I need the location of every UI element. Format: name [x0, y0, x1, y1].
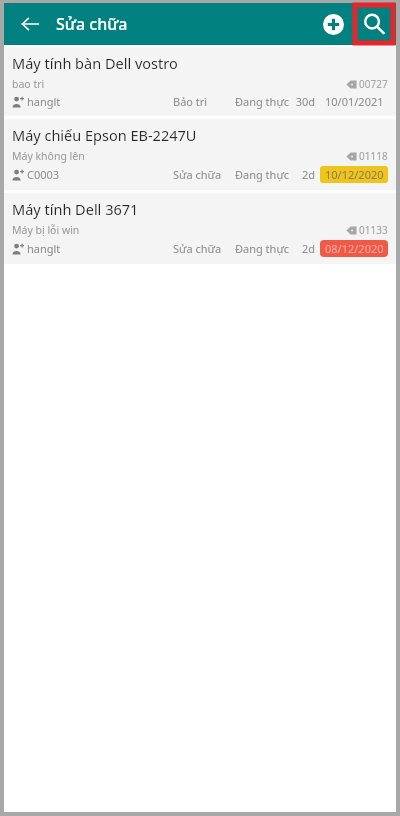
button[interactable]: Back	[12, 6, 48, 42]
staticText: Sửa chữa	[173, 167, 235, 182]
staticText: Đang thực	[235, 167, 293, 182]
staticText: 2d	[293, 241, 315, 256]
staticText: 01118	[359, 149, 388, 163]
staticText: 01133	[359, 223, 388, 237]
staticText: Đang thực	[235, 94, 293, 109]
staticText: Máy tính Dell 3671	[12, 199, 139, 219]
staticText: Sửa chữa	[56, 13, 128, 35]
staticText: hanglt	[27, 241, 61, 256]
staticText: Máy bị lỗi win	[12, 223, 80, 237]
button[interactable]: Máy tính bàn Dell vostro	[4, 47, 396, 116]
staticText: hanglt	[27, 94, 61, 109]
button[interactable]: Máy tính Dell 3671	[4, 193, 396, 264]
staticText: Sửa chữa	[173, 241, 235, 256]
staticText: 30d	[293, 94, 315, 109]
staticText: Máy tính bàn Dell vostro	[12, 53, 178, 73]
staticText: Máy không lên	[12, 149, 85, 163]
staticText: Bảo trì	[173, 94, 235, 109]
staticText: C0003	[27, 167, 60, 182]
staticText: bao tri	[12, 77, 45, 91]
staticText: Máy chiếu Epson EB-2247U	[12, 125, 197, 145]
staticText: 10/01/2021	[325, 94, 384, 109]
staticText: 00727	[359, 77, 388, 91]
staticText: 10/12/2020	[325, 167, 384, 182]
staticText: Đang thực	[235, 241, 293, 256]
button[interactable]: Search	[353, 3, 395, 45]
staticText: 08/12/2020	[325, 241, 384, 256]
staticText: 2d	[293, 167, 315, 182]
button[interactable]: Máy chiếu Epson EB-2247U	[4, 119, 396, 190]
button[interactable]: Add	[313, 4, 353, 44]
